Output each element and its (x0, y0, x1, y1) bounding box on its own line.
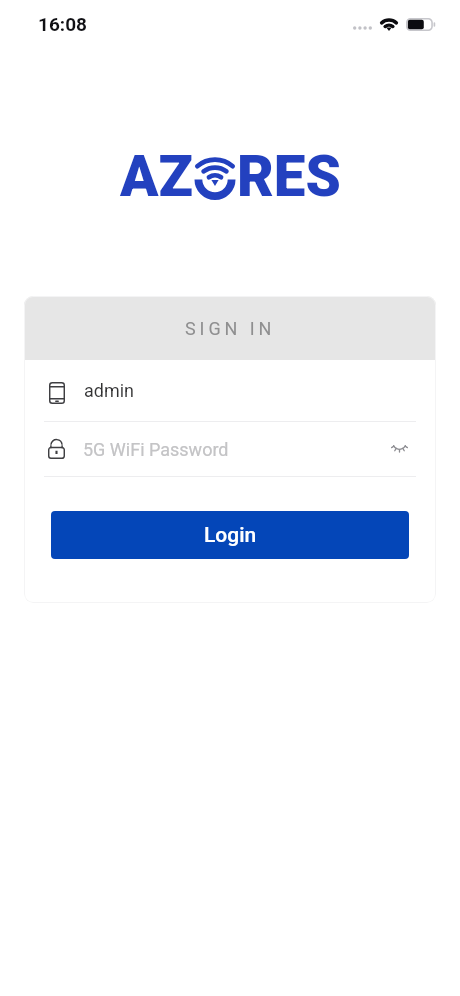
button[interactable]: Login (51, 511, 409, 559)
staticText: Login (204, 523, 257, 548)
button[interactable]: 5G WiFi Password (24, 422, 436, 476)
staticText: AZ (120, 144, 193, 210)
button[interactable]: admin (24, 360, 436, 421)
staticText: SIGN IN (185, 318, 276, 339)
staticText: 5G WiFi Password (83, 439, 229, 460)
staticText: RES (237, 144, 341, 210)
staticText: admin (84, 380, 135, 401)
staticText: 16:08 (38, 13, 87, 35)
button[interactable]: Show password (381, 431, 417, 467)
